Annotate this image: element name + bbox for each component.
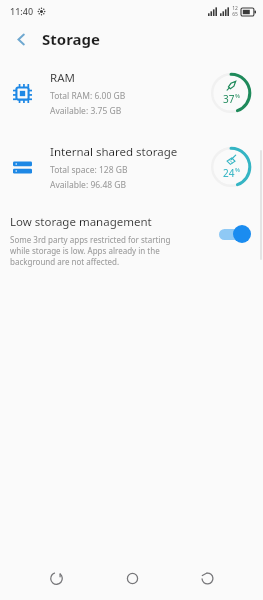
staticText: 24 (223, 166, 235, 180)
staticText: RAM (50, 70, 75, 86)
button[interactable]: Boost RAM (209, 71, 253, 115)
button[interactable]: Low storage management (0, 212, 263, 273)
button[interactable]: Low storage management toggle (217, 224, 253, 244)
staticText: Available: 3.75 GB (50, 105, 122, 117)
staticText: Storage (42, 29, 100, 49)
button[interactable]: Recent apps (36, 558, 76, 598)
button[interactable]: Back (187, 558, 227, 598)
staticText: Internal shared storage (50, 144, 178, 160)
button[interactable]: Internal shared storage (0, 136, 263, 198)
staticText: 12 65 (232, 5, 238, 18)
button[interactable]: Home (112, 558, 152, 598)
staticText: Available: 96.48 GB (50, 179, 127, 191)
staticText: % (235, 166, 240, 174)
staticText: Some 3rd party apps restricted for start… (10, 234, 178, 267)
staticText: Low storage management (10, 214, 152, 230)
staticText: Total space: 128 GB (50, 164, 128, 176)
button[interactable]: Clean storage (209, 145, 253, 189)
staticText: % (235, 92, 240, 100)
staticText: 11:40 (10, 5, 34, 17)
button[interactable]: Back (4, 22, 38, 56)
staticText: Total RAM: 6.00 GB (50, 90, 126, 102)
staticText: 37 (223, 92, 235, 106)
button[interactable]: RAM (0, 62, 263, 124)
